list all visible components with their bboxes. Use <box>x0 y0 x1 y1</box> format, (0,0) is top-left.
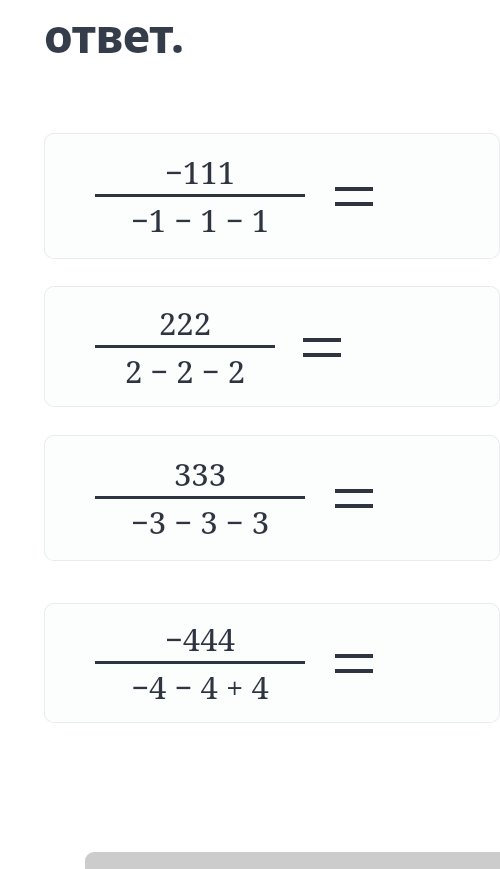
button[interactable]: −111 <box>44 133 500 259</box>
staticText: −111 <box>95 151 305 193</box>
staticText: −444 <box>95 618 305 660</box>
staticText: −1 − 1 − 1 <box>95 199 305 241</box>
button[interactable]: 333 <box>44 435 500 561</box>
staticText: 222 <box>95 302 275 344</box>
button[interactable]: 222 <box>44 286 500 407</box>
staticText: 333 <box>95 453 305 495</box>
staticText: ответ. <box>44 4 184 67</box>
staticText: 2 − 2 − 2 <box>95 350 275 392</box>
button[interactable]: −444 <box>44 603 500 723</box>
staticText: −4 − 4 + 4 <box>95 666 305 708</box>
staticText: −3 − 3 − 3 <box>95 501 305 543</box>
